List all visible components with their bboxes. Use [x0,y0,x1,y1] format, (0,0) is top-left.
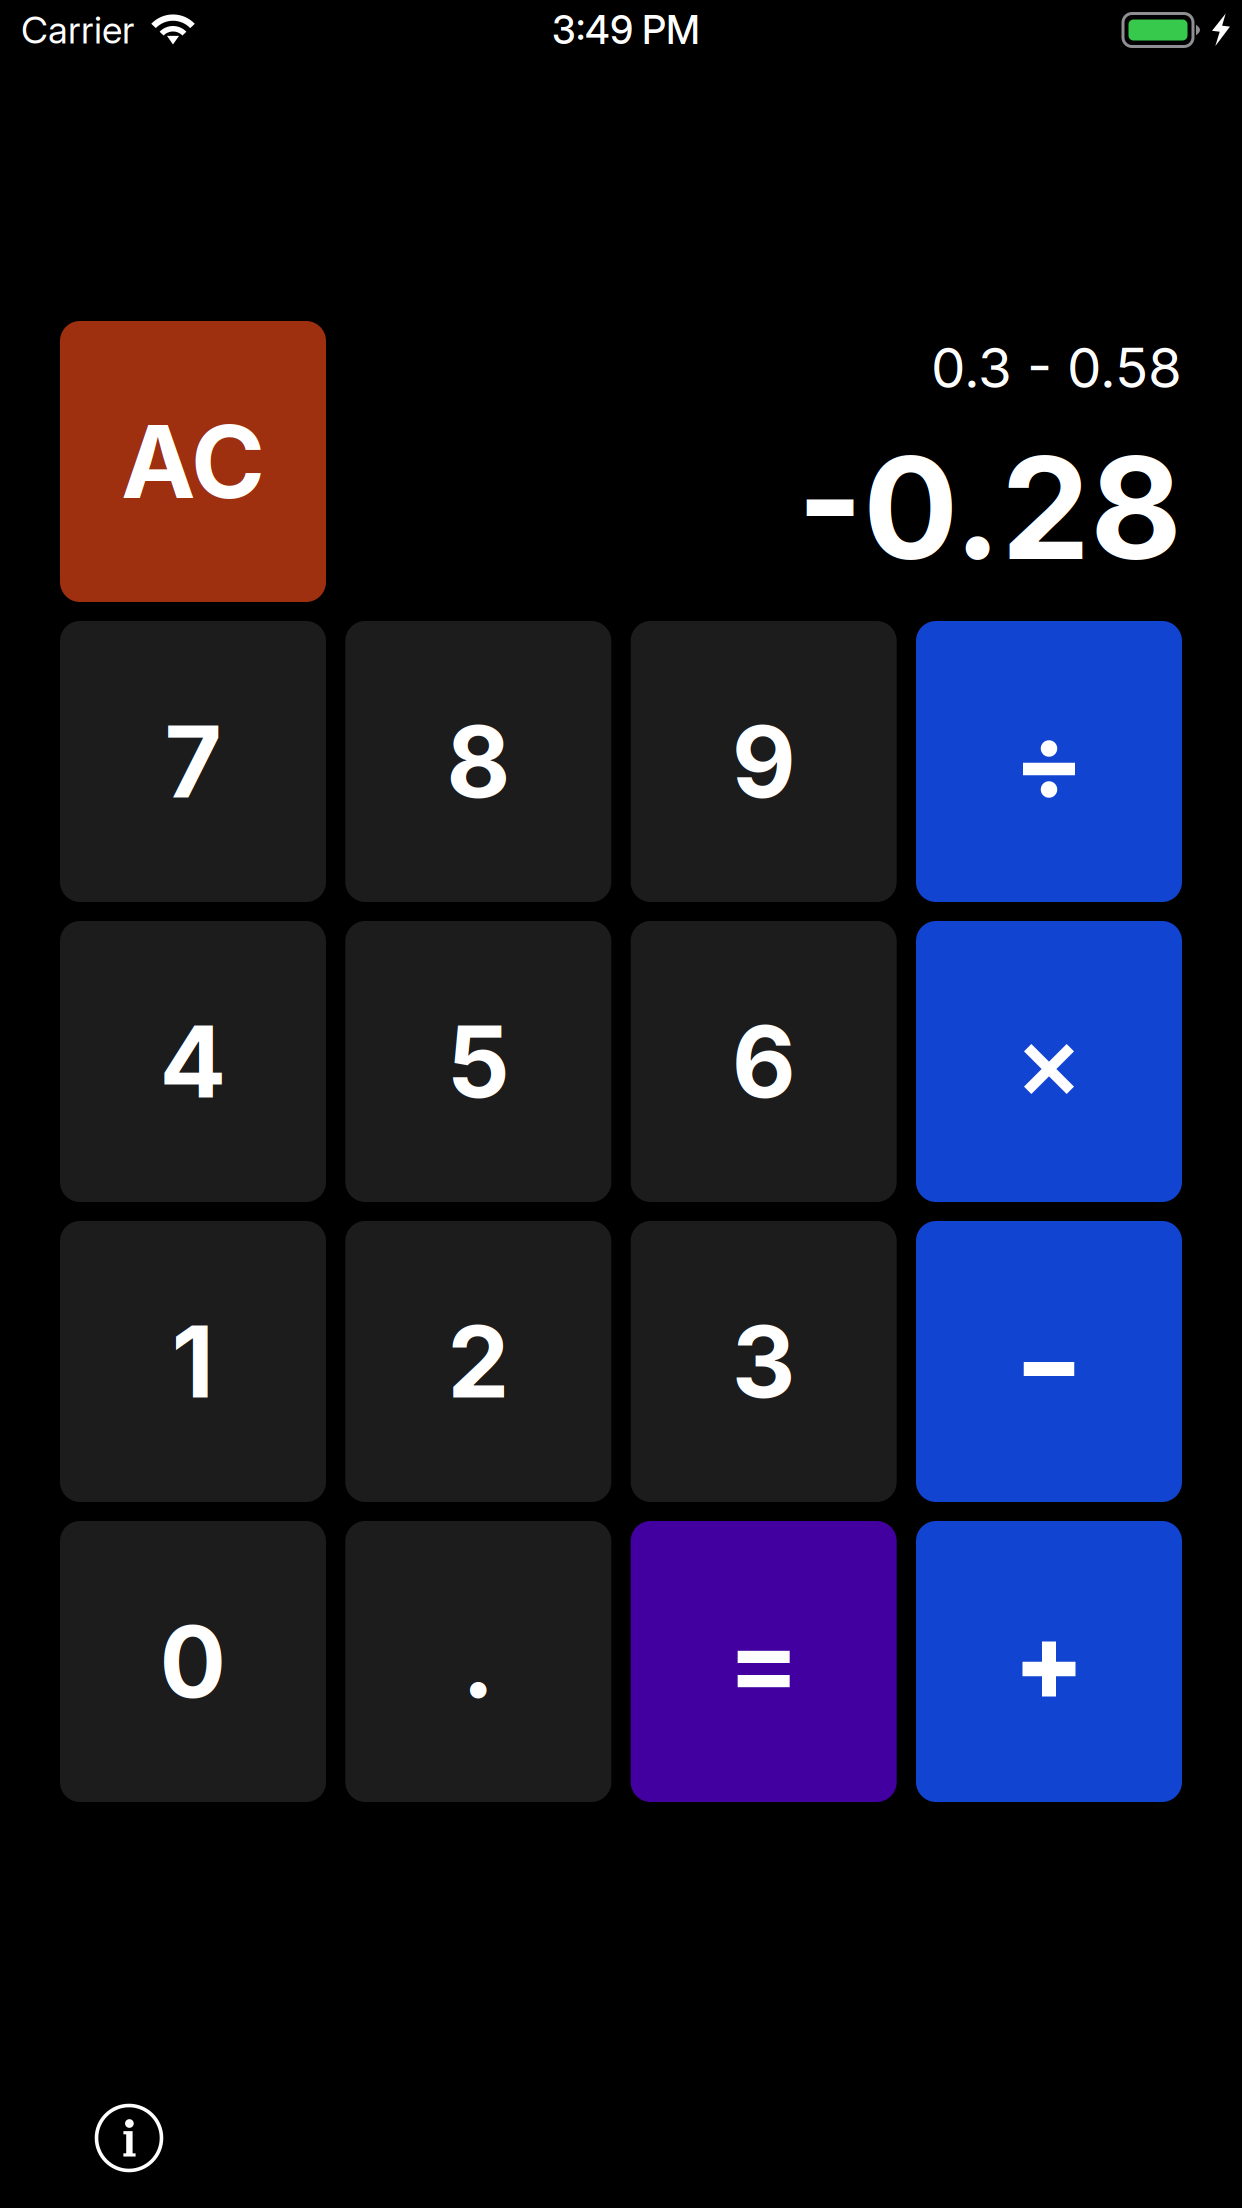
button[interactable]: Multiply [916,921,1182,1202]
button[interactable]: Subtract [916,1221,1182,1502]
staticText: 5 [447,1002,510,1121]
button[interactable]: Info [84,2093,174,2183]
staticText: 3 [732,1302,796,1421]
button[interactable]: Add [916,1521,1182,1802]
staticText: 9 [732,702,796,821]
button[interactable]: 4 [60,921,326,1202]
staticText: 6 [732,1002,796,1121]
staticText: 0 [159,1602,226,1721]
button[interactable]: 6 [631,921,897,1202]
button[interactable]: 0 [60,1521,326,1802]
button[interactable]: 2 [345,1221,611,1502]
button[interactable]: 7 [60,621,326,902]
staticText: AC [121,401,265,522]
button[interactable]: 5 [345,921,611,1202]
staticText: Carrier [21,7,134,53]
staticText: . [462,1602,495,1721]
button[interactable]: AC [60,321,326,602]
staticText: 4 [159,1002,226,1121]
button[interactable]: Divide [916,621,1182,902]
button[interactable]: . [345,1521,611,1802]
staticText: 3:49 PM [552,7,700,53]
button[interactable]: 3 [631,1221,897,1502]
staticText: 2 [447,1302,509,1421]
staticText: 8 [446,702,510,821]
staticText: 7 [164,702,221,821]
staticText: 0.3 - 0.58 [931,335,1182,401]
staticText: -0.28 [797,422,1182,593]
button[interactable]: 8 [345,621,611,902]
staticText: 1 [171,1302,214,1421]
button[interactable]: 1 [60,1221,326,1502]
button[interactable]: 9 [631,621,897,902]
button[interactable]: Equals [631,1521,897,1802]
